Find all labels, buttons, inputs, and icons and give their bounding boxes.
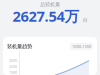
staticText: 1900 [9,70,17,75]
staticText: 2250 [9,64,17,69]
staticText: 台 [82,17,87,23]
staticText: 装机量趋势 [7,43,32,50]
staticText: 10/08-11/08 [72,44,91,49]
staticText: 总装机量 [40,1,60,8]
staticText: 2600 [9,58,17,63]
staticText: 2627.54万 [12,6,79,26]
